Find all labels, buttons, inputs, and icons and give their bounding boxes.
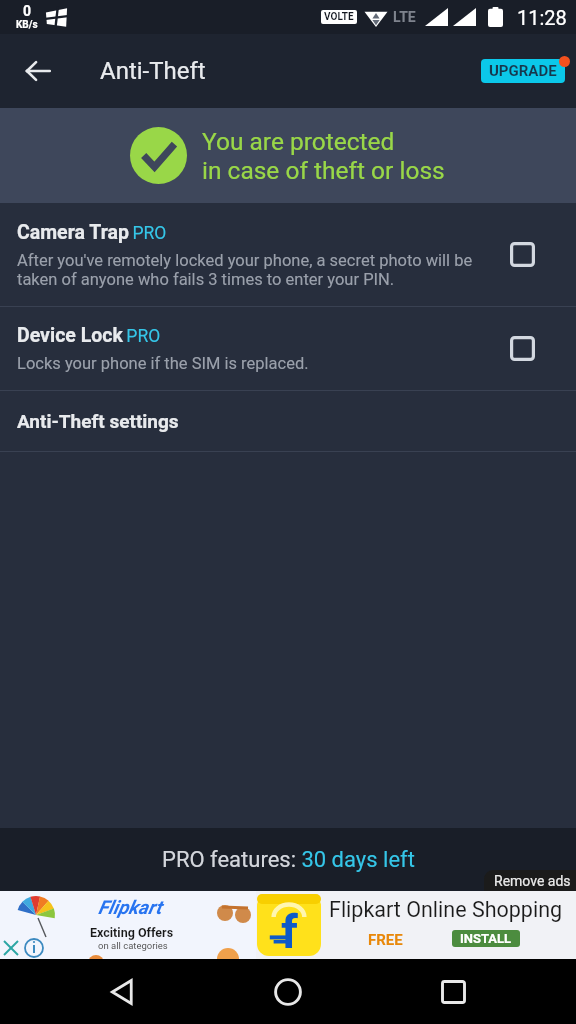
staticText: VOLTE	[324, 11, 354, 23]
staticText: in case of theft or loss	[202, 156, 445, 185]
staticText: You are protected	[202, 127, 395, 156]
button[interactable]: Recent apps	[423, 959, 483, 1024]
staticText: Remove ads	[494, 873, 571, 889]
staticText: Locks your phone if the SIM is replaced.	[17, 354, 309, 373]
staticText: on all categories	[98, 940, 168, 951]
button[interactable]: Enable Device Lock	[468, 307, 576, 390]
staticText: LTE	[393, 9, 416, 25]
staticText: INSTALL	[460, 931, 512, 946]
staticText: 0	[23, 3, 32, 19]
button[interactable]: Back	[92, 959, 152, 1024]
button[interactable]: Enable Camera Trap	[468, 203, 576, 306]
button[interactable]: Remove ads	[484, 870, 576, 891]
staticText: Flipkart	[98, 896, 162, 918]
staticText: KB/s	[16, 19, 38, 31]
button[interactable]: Back	[0, 34, 76, 108]
staticText: Camera Trap PRO	[17, 221, 167, 244]
staticText: FREE	[368, 931, 403, 949]
staticText: 11:28	[517, 6, 567, 29]
button[interactable]: Device Lock PRO	[0, 307, 576, 390]
staticText: After you've remotely locked your phone,…	[17, 251, 473, 289]
staticText: Device Lock PRO	[17, 324, 161, 347]
staticText: f	[281, 904, 298, 959]
button[interactable]: Camera Trap PRO	[0, 203, 576, 306]
staticText: Exciting Offers	[90, 925, 174, 940]
button[interactable]: Flipkart	[0, 891, 576, 959]
staticText: PRO features: 30 days left	[162, 847, 415, 873]
staticText: Flipkart Online Shopping	[329, 897, 563, 922]
button[interactable]: UPGRADE	[481, 59, 565, 83]
button[interactable]: Anti-Theft settings	[0, 391, 576, 451]
button[interactable]: INSTALL	[452, 930, 520, 947]
button[interactable]: Home	[258, 959, 318, 1024]
staticText: Anti-Theft settings	[17, 410, 179, 432]
staticText: Anti-Theft	[100, 57, 206, 85]
staticText: UPGRADE	[489, 62, 557, 80]
